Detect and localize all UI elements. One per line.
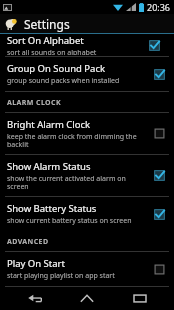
- button[interactable]: Play On Start: [0, 252, 174, 286]
- staticText: 20:36: [147, 1, 171, 13]
- button[interactable]: Bright Alarm Clock: [0, 113, 174, 154]
- staticText: Settings: [24, 16, 70, 32]
- staticText: Play On Start: [7, 257, 65, 270]
- staticText: show current battery status on screen: [7, 216, 132, 226]
- staticText: Bright Alarm Clock: [7, 118, 91, 131]
- button[interactable]: Back: [17, 287, 53, 310]
- staticText: Show Alarm Status: [7, 160, 91, 173]
- button[interactable]: Recent apps: [122, 287, 158, 310]
- button[interactable]: Settings: [0, 14, 174, 33]
- staticText: sort all sounds on alphabet: [7, 48, 97, 55]
- staticText: ADVANCED: [7, 237, 49, 247]
- staticText: group sound packs when installed: [7, 76, 120, 86]
- staticText: Show Battery Status: [7, 202, 97, 215]
- button[interactable]: Group On Sound Pack: [0, 57, 174, 91]
- staticText: show the current activated alarm on scre…: [7, 174, 144, 191]
- staticText: Sort On Alphabet: [7, 34, 84, 47]
- button[interactable]: Sort On Alphabet: [0, 34, 174, 56]
- staticText: ALARM CLOCK: [7, 98, 61, 108]
- button[interactable]: Home: [69, 287, 105, 310]
- button[interactable]: Show Battery Status: [0, 197, 174, 231]
- staticText: keep the alarm clock from dimming the ba…: [7, 132, 144, 149]
- button[interactable]: Show Alarm Status: [0, 155, 174, 196]
- staticText: start playing playlist on app start: [7, 271, 115, 281]
- staticText: Group On Sound Pack: [7, 62, 106, 75]
